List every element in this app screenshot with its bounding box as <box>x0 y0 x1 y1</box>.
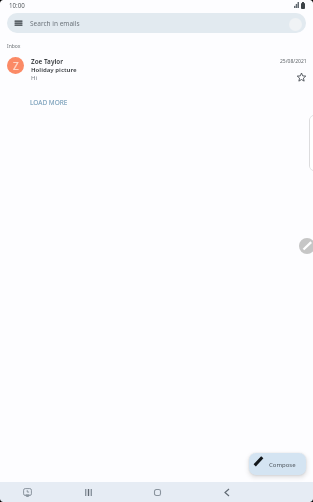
button[interactable]: Z <box>0 53 313 85</box>
staticText: Holiday picture <box>31 66 77 74</box>
staticText: Inbox <box>7 43 21 50</box>
staticText: Zoe Taylor <box>31 57 64 66</box>
button[interactable]: Compose <box>249 453 306 475</box>
staticText: 25/08/2021 <box>280 58 307 65</box>
staticText: 10:00 <box>9 1 25 9</box>
button[interactable]: Hide keyboard <box>18 483 36 501</box>
button[interactable]: LOAD MORE <box>25 96 73 109</box>
staticText: LOAD MORE <box>30 98 68 107</box>
button[interactable]: Star <box>295 71 307 83</box>
staticText: Hi <box>31 74 37 82</box>
button[interactable]: Back <box>218 483 236 501</box>
button[interactable]: Account <box>289 18 302 31</box>
button[interactable]: Home <box>148 483 166 501</box>
staticText: Compose <box>269 461 296 469</box>
button[interactable]: Search in emails <box>7 13 306 33</box>
staticText: Z <box>13 59 19 73</box>
staticText: Search in emails <box>30 19 80 28</box>
button[interactable]: Recent apps <box>79 483 97 501</box>
button[interactable]: Edit <box>299 238 313 254</box>
